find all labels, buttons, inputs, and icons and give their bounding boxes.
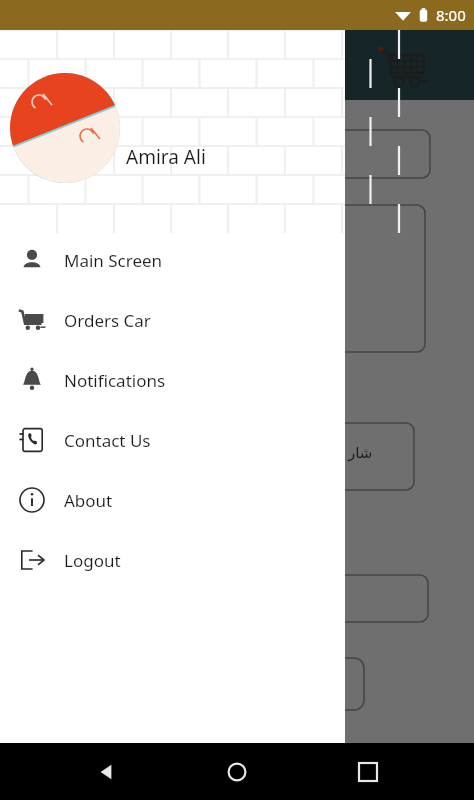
staticText: Main Screen	[64, 249, 163, 272]
button[interactable]: Orders Car	[0, 290, 345, 350]
staticText: Orders Car	[64, 309, 151, 332]
staticText: About	[64, 489, 113, 512]
button[interactable]: Home	[213, 748, 261, 796]
staticText: Amira Ali	[126, 144, 206, 170]
staticText: 8:00	[436, 5, 466, 25]
staticText: Logout	[64, 549, 121, 572]
staticText: Notifications	[64, 369, 166, 392]
staticText: شار	[348, 444, 373, 461]
button[interactable]: Notifications	[0, 350, 345, 410]
staticText: Contact Us	[64, 429, 151, 452]
button[interactable]: Main Screen	[0, 230, 345, 290]
button[interactable]: Back	[83, 748, 131, 796]
button[interactable]: Logout	[0, 530, 345, 590]
button[interactable]: Contact Us	[0, 410, 345, 470]
button[interactable]: About	[0, 470, 345, 530]
button[interactable]: Recent apps	[344, 748, 392, 796]
